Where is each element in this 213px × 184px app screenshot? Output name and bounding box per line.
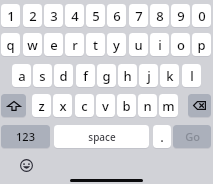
button[interactable]: 9	[171, 4, 190, 27]
staticText: 1	[7, 7, 15, 25]
staticText: 0	[198, 7, 206, 25]
staticText: z	[38, 97, 45, 115]
staticText: v	[102, 97, 109, 115]
button[interactable]: Go	[173, 125, 211, 148]
staticText: o	[177, 36, 185, 54]
staticText: w	[27, 36, 38, 54]
button[interactable]: b	[117, 94, 136, 117]
staticText: s	[39, 67, 46, 85]
staticText: 7	[135, 7, 143, 25]
staticText: t	[93, 36, 98, 54]
staticText: 4	[71, 7, 79, 25]
staticText: e	[50, 36, 58, 54]
button[interactable]: 6	[107, 4, 126, 27]
staticText: l	[190, 67, 194, 85]
button[interactable]: f	[76, 64, 95, 87]
button[interactable]: r	[65, 33, 84, 56]
button[interactable]: 4	[65, 4, 84, 27]
button[interactable]: g	[97, 64, 116, 87]
button[interactable]: 123	[1, 125, 50, 148]
button[interactable]: p	[192, 33, 211, 56]
staticText: a	[18, 67, 26, 85]
staticText: k	[166, 67, 174, 85]
button[interactable]: .	[153, 125, 171, 148]
button[interactable]: h	[118, 64, 137, 87]
staticText: c	[81, 97, 88, 115]
button[interactable]: 8	[150, 4, 169, 27]
button[interactable]: space	[54, 125, 149, 148]
staticText: f	[83, 67, 88, 85]
staticText: q	[6, 36, 15, 54]
button[interactable]: d	[54, 64, 73, 87]
button[interactable]: Emoji	[20, 159, 33, 172]
button[interactable]: l	[182, 64, 201, 87]
button[interactable]: Backspace	[188, 94, 211, 117]
staticText: 6	[113, 7, 121, 25]
staticText: m	[162, 97, 175, 115]
button[interactable]: q	[1, 33, 20, 56]
button[interactable]: j	[139, 64, 158, 87]
staticText: 5	[92, 7, 100, 25]
button[interactable]: e	[44, 33, 63, 56]
button[interactable]: y	[107, 33, 126, 56]
staticText: space	[88, 130, 116, 144]
staticText: i	[158, 36, 162, 54]
staticText: x	[59, 97, 67, 115]
staticText: g	[102, 67, 111, 85]
button[interactable]: o	[171, 33, 190, 56]
staticText: h	[123, 67, 132, 85]
staticText: 3	[50, 7, 58, 25]
staticText: 2	[29, 7, 37, 25]
button[interactable]: t	[86, 33, 105, 56]
button[interactable]: c	[75, 94, 94, 117]
staticText: n	[143, 97, 152, 115]
staticText: 9	[177, 7, 185, 25]
staticText: y	[113, 36, 120, 54]
button[interactable]: k	[160, 64, 179, 87]
button[interactable]: z	[32, 94, 51, 117]
button[interactable]: Shift	[1, 94, 26, 117]
staticText: j	[147, 67, 151, 85]
button[interactable]: v	[96, 94, 115, 117]
button[interactable]: x	[53, 94, 72, 117]
button[interactable]: u	[129, 33, 148, 56]
button[interactable]: w	[23, 33, 42, 56]
button[interactable]: n	[138, 94, 157, 117]
button[interactable]: 1	[1, 4, 20, 27]
staticText: p	[197, 36, 206, 54]
staticText: u	[134, 36, 143, 54]
button[interactable]: s	[33, 64, 52, 87]
staticText: 123	[16, 129, 35, 144]
staticText: Go	[185, 129, 200, 144]
button[interactable]: 5	[86, 4, 105, 27]
button[interactable]: 2	[23, 4, 42, 27]
staticText: r	[72, 36, 78, 54]
button[interactable]: 3	[44, 4, 63, 27]
button[interactable]: 7	[129, 4, 148, 27]
staticText: 8	[156, 7, 164, 25]
staticText: .	[160, 128, 164, 146]
button[interactable]: m	[159, 94, 178, 117]
staticText: b	[122, 97, 131, 115]
button[interactable]: 0	[192, 4, 211, 27]
staticText: d	[59, 67, 68, 85]
button[interactable]: i	[150, 33, 169, 56]
button[interactable]: a	[12, 64, 31, 87]
